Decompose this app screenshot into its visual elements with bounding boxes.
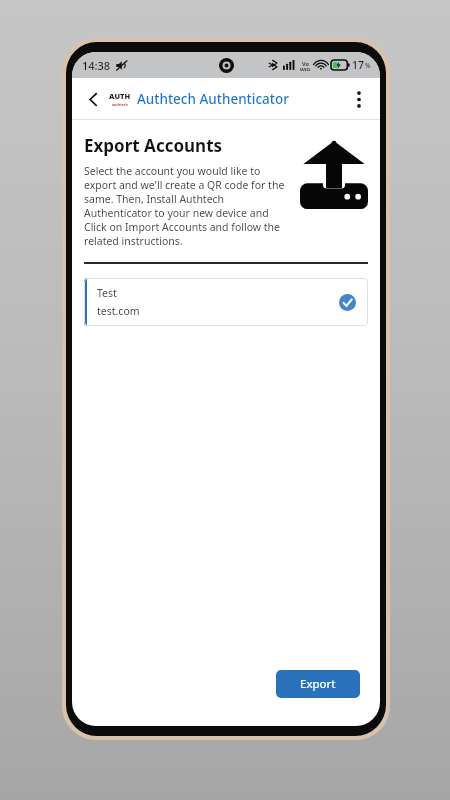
staticText: Authtech Authenticator xyxy=(137,90,289,108)
staticText: AUTH xyxy=(109,91,131,101)
staticText: Test xyxy=(97,286,117,300)
staticText: Vo xyxy=(302,60,309,67)
other: Selected xyxy=(339,294,356,311)
staticText: Export xyxy=(300,676,336,692)
staticText: 14:38 xyxy=(82,58,111,73)
staticText: test.com xyxy=(97,304,140,318)
staticText: authtech xyxy=(112,102,128,107)
button[interactable]: Test xyxy=(84,278,368,326)
staticText: Export Accounts xyxy=(84,134,223,157)
button[interactable]: Export xyxy=(276,670,360,698)
staticText: WiFi xyxy=(300,67,311,71)
staticText: Select the account you would like to exp… xyxy=(84,164,292,248)
staticText: 17 xyxy=(352,58,365,72)
button[interactable]: More options xyxy=(346,86,372,112)
button[interactable]: Back xyxy=(80,86,106,112)
staticText: % xyxy=(365,61,371,70)
